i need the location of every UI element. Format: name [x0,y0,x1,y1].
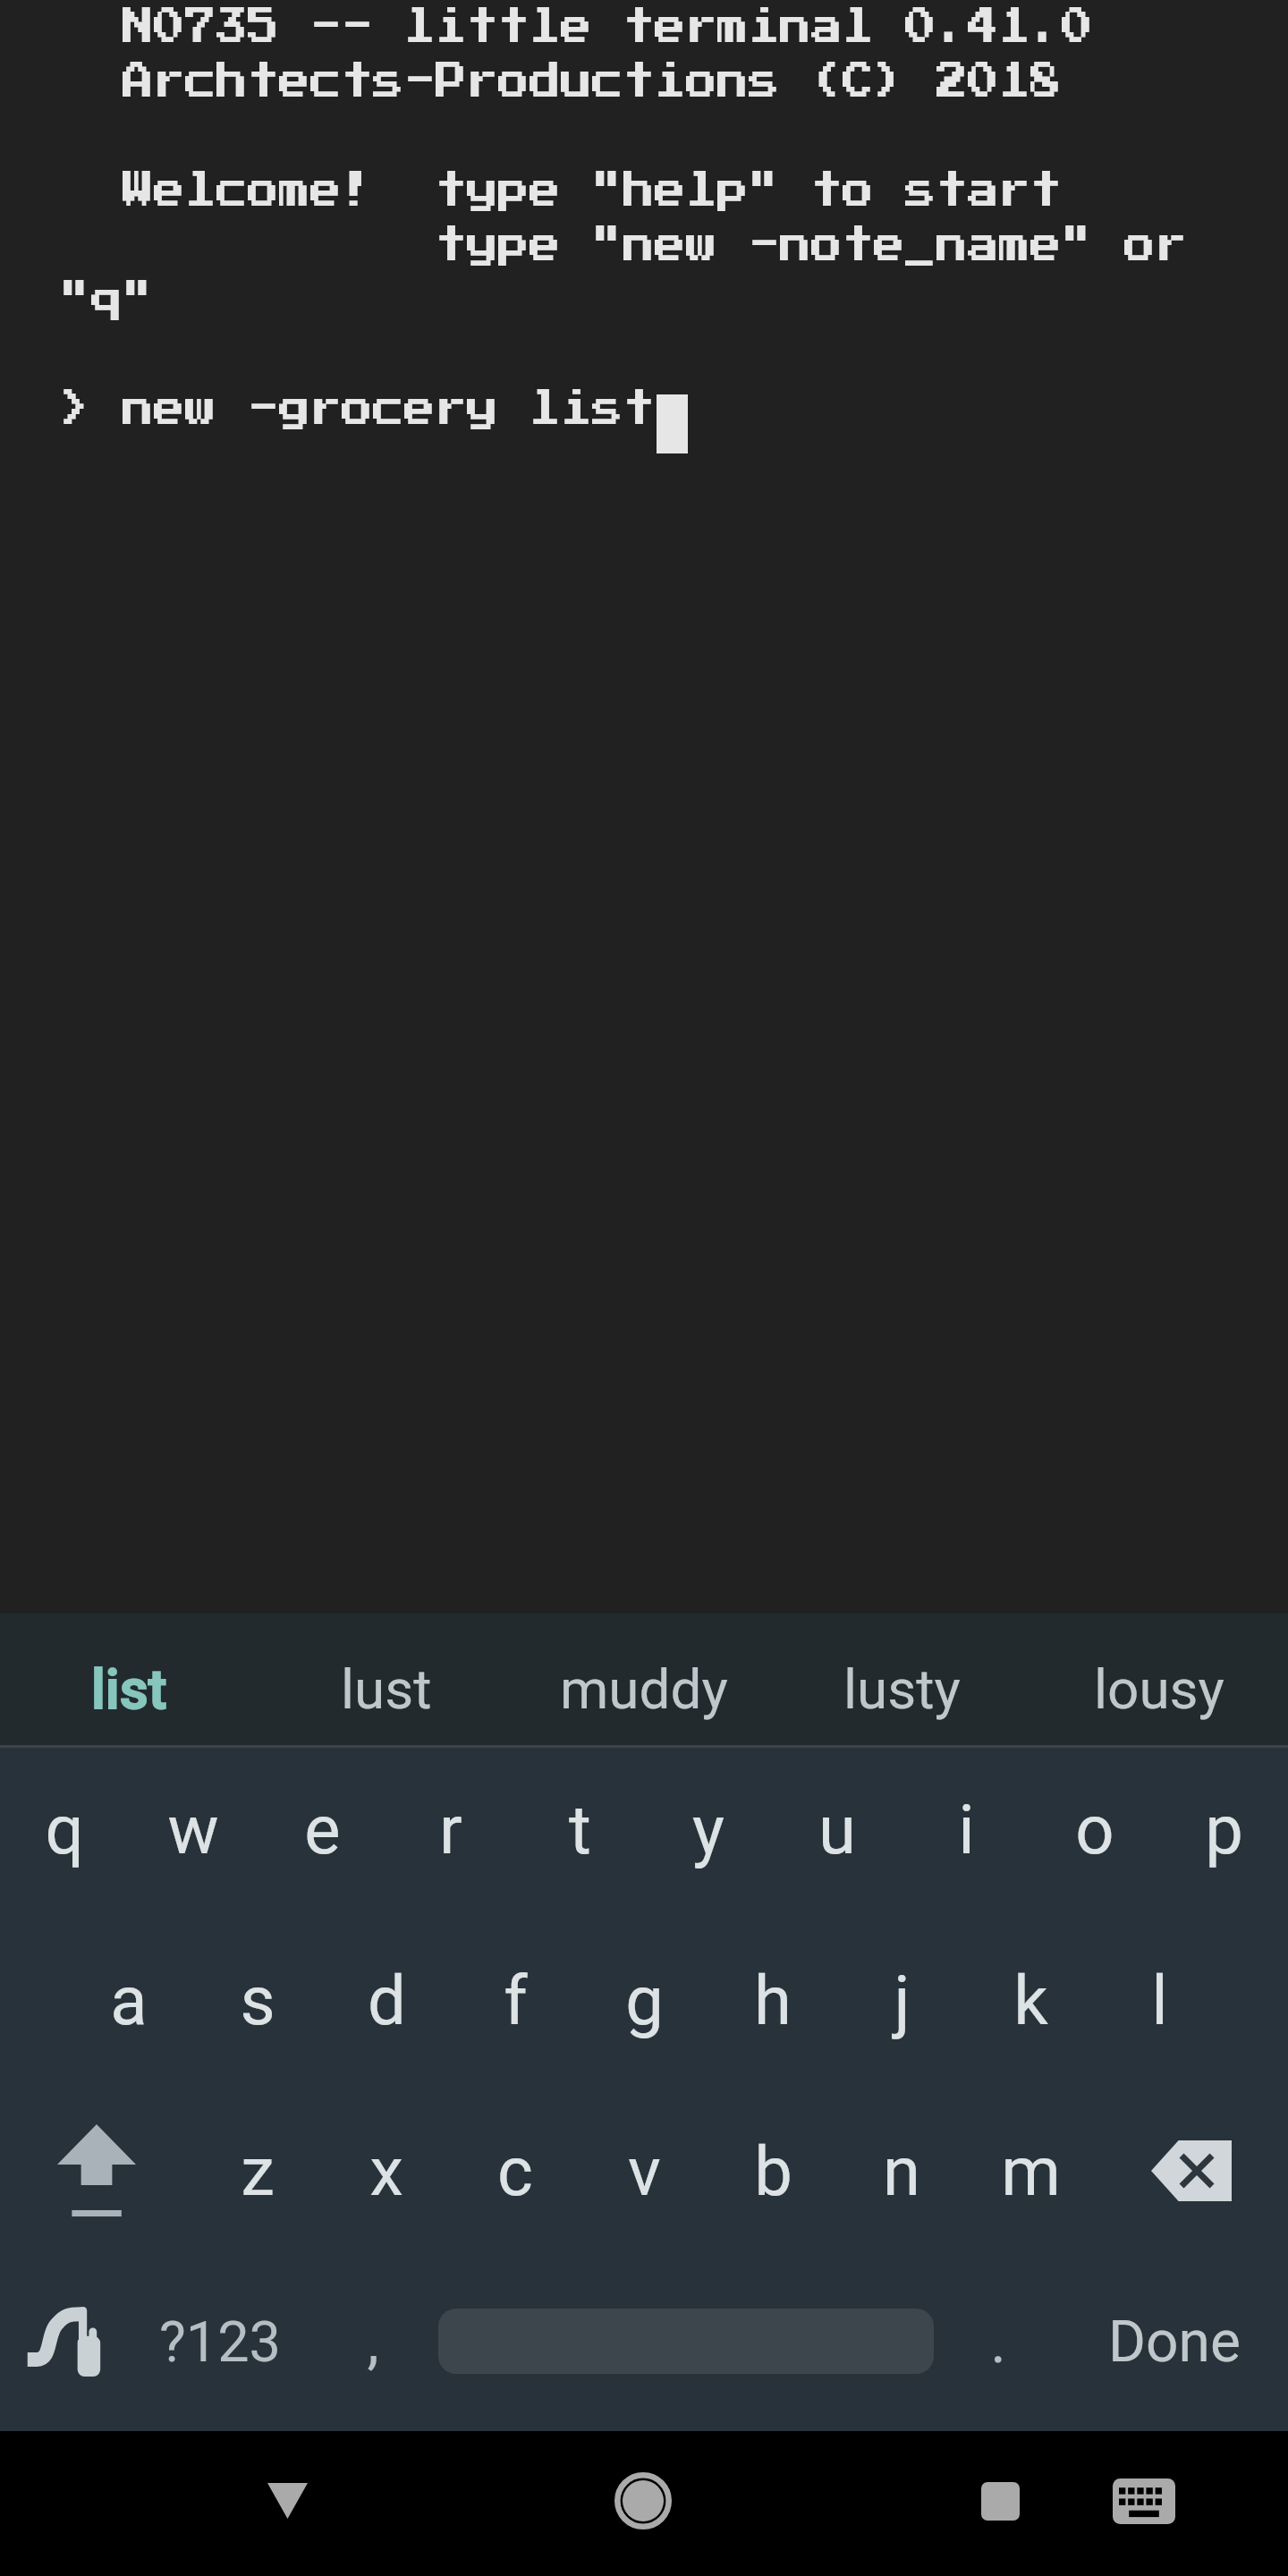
staticText: a [110,1961,148,2040]
staticText: e [304,1790,341,1869]
button[interactable]: n [837,2089,966,2260]
button[interactable]: lusty [773,1614,1030,1748]
staticText: h [754,1961,792,2040]
button[interactable]: Backspace [1095,2085,1288,2256]
button[interactable]: Shift [0,2085,193,2256]
staticText: r [439,1790,462,1869]
button[interactable]: Home [580,2447,706,2555]
staticText: s [240,1961,275,2040]
button[interactable]: l [1095,1919,1224,2089]
staticText: t [569,1790,591,1869]
button[interactable]: x [322,2089,451,2260]
button[interactable]: . [934,2260,1063,2431]
staticText: k [1013,1961,1048,2040]
staticText: u [818,1790,856,1869]
button[interactable]: q [0,1748,129,1919]
staticText: j [894,1961,911,2040]
staticText: v [628,2131,661,2211]
staticText: o [1075,1790,1114,1869]
staticText: q [45,1790,84,1869]
staticText: lusty [843,1657,961,1722]
button[interactable]: s [193,1919,322,2089]
button[interactable]: Hide keyboard [225,2447,350,2555]
button[interactable]: f [451,1919,580,2089]
button[interactable]: Switch keyboard [1081,2447,1207,2555]
staticText: m [1001,2131,1061,2211]
staticText: N0735 -- little terminal 0.41.0 Archtect… [60,7,1187,429]
button[interactable]: Recent apps [937,2447,1063,2555]
button[interactable]: e [258,1748,386,1919]
button[interactable]: h [708,1919,837,2089]
button[interactable]: lust [258,1614,515,1748]
button[interactable]: a [64,1919,193,2089]
button[interactable]: lousy [1030,1614,1288,1748]
staticText: z [241,2131,275,2211]
staticText: w [167,1790,219,1869]
staticText: . [990,2307,1006,2377]
button[interactable]: u [773,1748,902,1919]
button[interactable]: Done [1063,2260,1286,2431]
button[interactable]: o [1030,1748,1159,1919]
staticText: lousy [1094,1657,1224,1722]
staticText: p [1205,1790,1243,1869]
staticText: y [692,1790,724,1869]
button[interactable]: w [129,1748,258,1919]
button[interactable]: i [902,1748,1030,1919]
button[interactable]: p [1159,1748,1288,1919]
staticText: c [497,2131,533,2211]
button[interactable]: t [515,1748,644,1919]
staticText: x [369,2131,403,2211]
staticText: g [625,1961,664,2040]
staticText: list [91,1657,167,1722]
staticText: Done [1108,2309,1241,2376]
button[interactable]: c [451,2089,580,2260]
staticText: d [368,1961,406,2040]
button[interactable]: y [644,1748,773,1919]
button[interactable]: ?123 [131,2260,309,2431]
button[interactable]: m [966,2089,1095,2260]
button[interactable]: z [193,2089,322,2260]
button[interactable]: j [837,1919,966,2089]
staticText: n [883,2131,920,2211]
staticText: l [1151,1961,1168,2040]
staticText: b [754,2131,792,2211]
button[interactable]: muddy [515,1614,773,1748]
button[interactable]: d [322,1919,451,2089]
staticText: lust [341,1657,432,1722]
staticText: i [958,1790,975,1869]
button[interactable]: r [386,1748,515,1919]
staticText: , [367,2307,379,2377]
button[interactable]: list [0,1614,258,1748]
staticText: muddy [560,1657,728,1722]
button[interactable]: v [580,2089,708,2260]
button[interactable]: b [708,2089,837,2260]
button[interactable]: Gesture typing [2,2256,129,2427]
button[interactable]: g [580,1919,708,2089]
button[interactable]: , [309,2260,437,2431]
button[interactable]: k [966,1919,1095,2089]
staticText: f [504,1961,528,2040]
staticText: ?123 [159,2309,281,2376]
